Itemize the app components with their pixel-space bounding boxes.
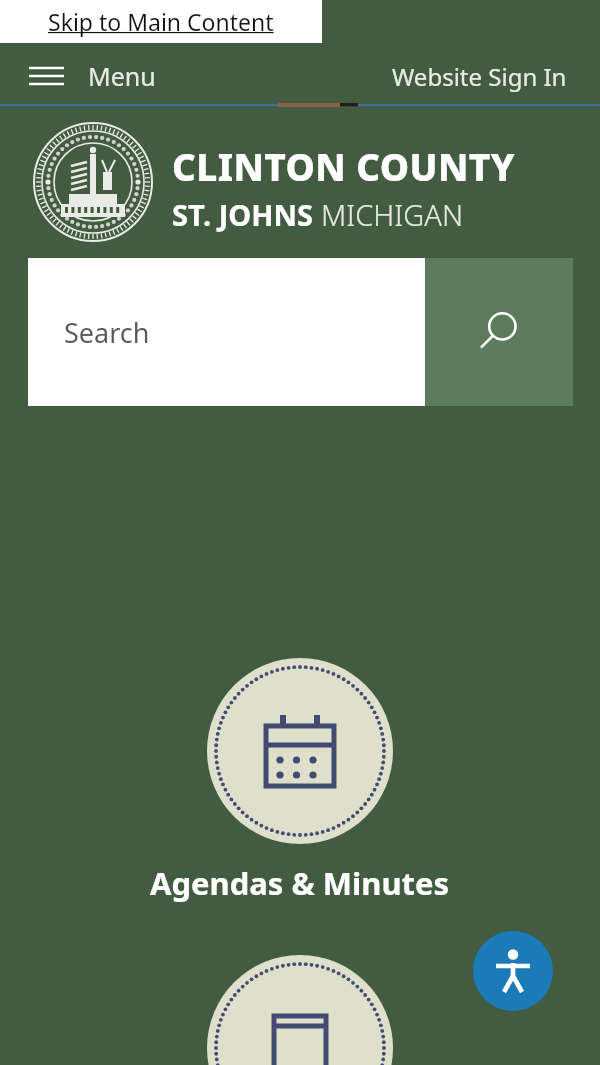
staticText: Agendas & Minutes bbox=[150, 862, 450, 904]
staticText: Skip to Main Content bbox=[48, 6, 274, 37]
button[interactable]: Website Sign In bbox=[392, 58, 567, 94]
button[interactable]: Accessibility options bbox=[473, 931, 553, 1011]
staticText: CLINTON COUNTY bbox=[172, 141, 515, 191]
staticText: Website Sign In bbox=[392, 60, 567, 93]
button[interactable] bbox=[207, 955, 393, 1065]
staticText: Menu bbox=[88, 59, 156, 93]
staticText: ST. JOHNS bbox=[172, 195, 321, 234]
button[interactable]: Search bbox=[28, 258, 425, 406]
button[interactable]: Menu bbox=[20, 55, 156, 97]
staticText: MICHIGAN bbox=[321, 195, 464, 234]
button[interactable]: Skip to Main Content bbox=[0, 0, 322, 43]
button[interactable]: Agendas & Minutes bbox=[0, 658, 600, 904]
button[interactable]: Search bbox=[425, 258, 573, 406]
staticText: Search bbox=[64, 314, 150, 351]
other: Clinton County seal bbox=[33, 122, 153, 242]
other: Menu bbox=[20, 55, 64, 97]
